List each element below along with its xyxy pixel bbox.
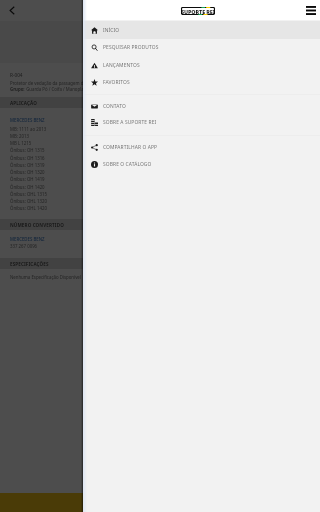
button[interactable]: LANÇAMENTOS <box>83 56 320 74</box>
staticText: Protetor de vedação da passagem de água <box>10 80 98 86</box>
staticText: CONTATO <box>103 103 126 110</box>
staticText: PESQUISAR PRODUTOS <box>103 44 159 51</box>
button[interactable]: INÍCIO <box>83 21 320 39</box>
staticText: COMPARTILHAR O APP <box>103 144 158 151</box>
staticText: Ônibus: OHL 1315 <box>10 191 47 197</box>
staticText: Ônibus: OH 1319 <box>10 162 45 168</box>
staticText: ESPECIFICAÇÕES <box>10 261 49 267</box>
staticText: SUPORTE REI <box>181 8 215 15</box>
button[interactable]: Back <box>1 0 23 20</box>
staticText: Ônibus: OH 1320 <box>10 169 45 175</box>
staticText: Grupo: <box>10 86 25 92</box>
staticText: MERCEDES BENZ <box>10 117 45 123</box>
button[interactable]: COMPARTILHAR O APP <box>83 138 320 156</box>
staticText: Ônibus: OHL 1320 <box>10 198 47 204</box>
staticText: Guarda Pó / Coifa / Manopla <box>25 86 84 92</box>
staticText: R-004 <box>10 72 23 78</box>
staticText: MB L 1215 <box>10 140 32 146</box>
staticText: SOBRE A SUPORTE REI <box>103 119 157 126</box>
staticText: SOBRE O CATÁLOGO <box>103 161 152 168</box>
staticText: Nenhuma Especificação Disponível <box>10 274 81 280</box>
staticText: MB: 1111 ao 2013 <box>10 126 47 132</box>
staticText: Ônibus: OH 1316 <box>10 155 45 161</box>
button[interactable]: SOBRE O CATÁLOGO <box>83 155 320 173</box>
button[interactable]: FAVORITOS <box>83 73 320 91</box>
staticText: INÍCIO <box>103 27 120 34</box>
button[interactable]: PESQUISAR PRODUTOS <box>83 38 320 56</box>
button[interactable]: Open navigation menu <box>298 0 320 20</box>
staticText: APLICAÇÃO <box>10 100 37 106</box>
button[interactable]: CONTATO <box>83 97 320 115</box>
staticText: NÚMERO CONVERTIDO <box>10 222 64 228</box>
staticText: MERCEDES BENZ <box>10 236 45 242</box>
staticText: Ônibus: OH 1315 <box>10 147 45 153</box>
staticText: Ônibus: OH 1420 <box>10 184 45 190</box>
staticText: FAVORITOS <box>103 79 130 86</box>
staticText: Ônibus: OHL 1420 <box>10 205 47 211</box>
staticText: LANÇAMENTOS <box>103 62 140 69</box>
staticText: MB: 2013 <box>10 133 29 139</box>
staticText: Ônibus: OH 1419 <box>10 176 45 182</box>
staticText: 337 267 0096 <box>10 243 38 249</box>
button[interactable]: SOBRE A SUPORTE REI <box>83 113 320 131</box>
